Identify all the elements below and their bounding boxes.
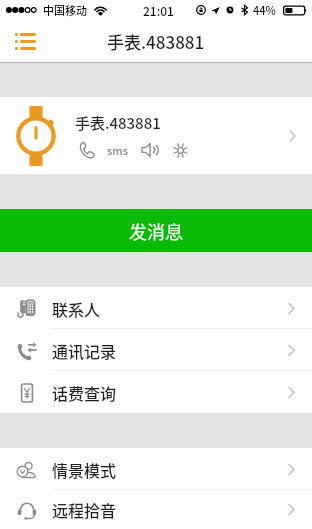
button[interactable]: 发消息 [0, 209, 312, 252]
button[interactable]: 情景模式 [0, 448, 312, 490]
staticText: 话费查询 [52, 381, 117, 404]
button[interactable]: Menu [7, 20, 43, 63]
staticText: 通讯记录 [52, 339, 117, 362]
staticText: sms [107, 142, 128, 158]
staticText: 联系人 [52, 297, 101, 320]
button[interactable]: 远程拾音 [0, 490, 312, 529]
staticText: 手表.483881 [75, 112, 161, 134]
staticText: 远程拾音 [52, 498, 117, 521]
button[interactable]: 通讯记录 [0, 329, 312, 371]
staticText: 情景模式 [52, 458, 117, 481]
staticText: 21:01 [143, 2, 174, 19]
button[interactable]: 话费查询 [0, 371, 312, 413]
staticText: 44% [253, 2, 276, 18]
staticText: 手表.483881 [107, 29, 205, 54]
button[interactable]: 手表.483881 [0, 97, 312, 174]
button[interactable]: 联系人 [0, 287, 312, 329]
staticText: 发消息 [129, 218, 183, 244]
staticText: 中国移动 [43, 2, 87, 18]
